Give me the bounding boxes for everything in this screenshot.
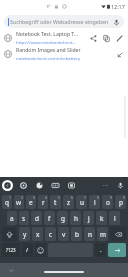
staticText: Notebook Test, Laptop T… <box>16 31 78 38</box>
button[interactable]: Insert suggestion <box>113 48 126 61</box>
staticText: 7 <box>84 195 86 200</box>
staticText: Suchbegriff oder Webadresse eingeben <box>10 18 111 25</box>
staticText: u <box>80 198 84 207</box>
button[interactable]: p <box>115 195 126 209</box>
staticText: h <box>74 214 78 223</box>
staticText: b <box>75 230 79 239</box>
staticText: n <box>88 230 92 239</box>
button[interactable]: Shift <box>2 227 17 241</box>
button[interactable]: r <box>38 195 48 209</box>
button[interactable]: x <box>32 227 43 241</box>
staticText: ?123 <box>6 247 16 253</box>
button[interactable]: Hide keyboard <box>8 267 15 274</box>
button[interactable]: Suchbegriff oder Webadresse eingeben <box>4 15 124 28</box>
button[interactable]: Notebook Test, Laptop T… <box>0 30 128 46</box>
staticText: 3 <box>33 195 35 200</box>
button[interactable]: o <box>102 195 113 209</box>
button[interactable]: y <box>19 227 30 241</box>
staticText: y <box>23 230 27 239</box>
staticText: k <box>100 214 104 223</box>
button[interactable]: Random Images and Slider <box>0 46 128 62</box>
button[interactable]: GIF <box>50 180 61 191</box>
button[interactable]: c <box>45 227 56 241</box>
button[interactable]: a <box>7 211 17 225</box>
button[interactable]: u <box>76 195 87 209</box>
button[interactable]: . <box>95 243 106 257</box>
button[interactable]: Settings <box>18 180 29 191</box>
staticText: p <box>119 198 123 207</box>
button[interactable]: Edit <box>113 32 126 45</box>
button[interactable]: i <box>89 195 100 209</box>
staticText: / <box>26 246 29 254</box>
button[interactable]: n <box>84 227 95 241</box>
staticText: a <box>10 214 14 223</box>
button[interactable]: m <box>97 227 108 241</box>
staticText: c <box>49 230 53 239</box>
button[interactable]: z <box>63 195 74 209</box>
button[interactable]: g <box>57 211 68 225</box>
button[interactable]: Home <box>44 271 84 273</box>
staticText: w <box>16 198 22 207</box>
button[interactable]: e <box>26 195 36 209</box>
staticText: . <box>100 246 102 254</box>
button[interactable]: v <box>58 227 69 241</box>
button[interactable]: Copy <box>100 32 113 45</box>
button[interactable]: h <box>70 211 81 225</box>
staticText: f <box>48 214 51 223</box>
button[interactable]: / <box>22 243 33 257</box>
staticText: 2 <box>21 195 23 200</box>
staticText: z <box>67 198 71 207</box>
staticText: 12:17 <box>111 3 125 10</box>
button[interactable]: Voice input <box>115 180 126 191</box>
staticText: 0 <box>123 195 125 200</box>
staticText: Random Images and Slider <box>16 47 81 54</box>
staticText: q <box>5 198 9 207</box>
button[interactable]: d <box>31 211 42 225</box>
staticText: https://www.notebookcheck… <box>16 39 77 45</box>
button[interactable]: Backspace <box>110 227 126 241</box>
button[interactable]: w <box>14 195 24 209</box>
staticText: notebookcheck.com/nbcbattery <box>16 55 81 61</box>
button[interactable]: Clipboard <box>66 180 77 191</box>
button[interactable]: l <box>109 211 120 225</box>
button[interactable]: More options <box>100 180 111 191</box>
staticText: 4 <box>45 195 47 200</box>
staticText: v <box>62 230 66 239</box>
staticText: 9 <box>110 195 112 200</box>
button[interactable]: s <box>19 211 29 225</box>
staticText: g <box>61 214 65 223</box>
button[interactable]: q <box>2 195 12 209</box>
button[interactable]: Stickers <box>34 180 45 191</box>
staticText: l <box>114 214 116 223</box>
button[interactable]: t <box>50 195 61 209</box>
staticText: 8 <box>97 195 99 200</box>
staticText: 1 <box>9 195 11 200</box>
button[interactable]: ?123 <box>2 243 20 257</box>
staticText: m <box>100 230 106 239</box>
button[interactable]: Go <box>108 243 126 257</box>
staticText: s <box>22 214 26 223</box>
staticText: 6 <box>71 195 73 200</box>
button[interactable]: b <box>71 227 82 241</box>
staticText: r <box>42 198 45 207</box>
button[interactable]: Voice search <box>111 17 121 27</box>
button[interactable]: Share <box>87 32 100 45</box>
staticText: j <box>88 214 90 223</box>
staticText: e <box>29 198 33 207</box>
button[interactable]: Emoji <box>35 243 46 257</box>
staticText: x <box>36 230 40 239</box>
button[interactable]: Back <box>2 180 13 191</box>
staticText: o <box>106 198 110 207</box>
staticText: i <box>94 198 96 207</box>
button[interactable]: j <box>83 211 94 225</box>
staticText: t <box>54 198 57 207</box>
staticText: d <box>35 214 39 223</box>
button[interactable]: f <box>44 211 55 225</box>
staticText: 5 <box>58 195 60 200</box>
button[interactable]: k <box>96 211 107 225</box>
